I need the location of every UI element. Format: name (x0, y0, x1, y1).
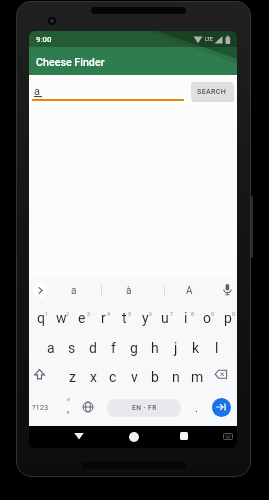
button[interactable] (33, 368, 46, 381)
button[interactable] (29, 47, 237, 75)
button[interactable] (180, 432, 188, 440)
staticText: 4 (107, 311, 111, 317)
button[interactable] (82, 401, 94, 413)
staticText: s (68, 340, 76, 356)
staticText: m (191, 369, 204, 385)
staticText: LTE (205, 37, 213, 43)
staticText: a (47, 340, 55, 356)
staticText: A (186, 285, 193, 297)
staticText: t (122, 310, 127, 326)
button[interactable]: o (197, 309, 217, 327)
button[interactable]: z (62, 368, 82, 386)
staticText: 1 (45, 311, 49, 317)
button[interactable] (33, 283, 48, 298)
staticText: , (67, 402, 70, 415)
button[interactable]: a (63, 283, 84, 298)
button[interactable]: y (135, 309, 155, 327)
staticText: n (172, 369, 180, 385)
staticText: k (192, 340, 200, 356)
staticText: r (101, 310, 106, 326)
staticText: 5 (128, 311, 132, 317)
staticText: y (142, 310, 149, 326)
button[interactable] (212, 398, 231, 417)
button[interactable]: s (62, 339, 82, 357)
staticText: x (90, 369, 97, 385)
staticText: i (184, 310, 188, 326)
staticText: d (89, 340, 97, 356)
button[interactable] (73, 431, 85, 441)
staticText: a (71, 285, 77, 297)
staticText: q (37, 310, 45, 326)
button[interactable]: m (187, 368, 207, 386)
button[interactable] (223, 433, 233, 440)
button[interactable] (214, 369, 228, 380)
staticText: a (34, 85, 40, 98)
staticText: 2 (66, 311, 70, 317)
button[interactable]: EN · FR (107, 399, 181, 417)
staticText: 0 (232, 311, 236, 317)
button[interactable]: h (145, 339, 165, 357)
staticText: 6 (149, 311, 153, 317)
staticText: 8 (191, 311, 195, 317)
staticText: ?123 (32, 403, 49, 412)
button[interactable]: d (83, 339, 103, 357)
staticText: h (151, 340, 159, 356)
button[interactable]: SEARCH (191, 82, 233, 100)
button[interactable] (32, 79, 184, 101)
button[interactable] (129, 432, 139, 442)
button[interactable]: u (155, 309, 175, 327)
staticText: g (130, 340, 138, 356)
staticText: . (195, 402, 198, 415)
staticText: 9 (211, 311, 215, 317)
button[interactable]: a (41, 339, 61, 357)
button[interactable]: q (31, 309, 51, 327)
staticText: SEARCH (197, 87, 227, 95)
button[interactable] (222, 283, 233, 297)
staticText: u (161, 310, 169, 326)
button[interactable]: . (190, 400, 202, 417)
staticText: 7 (170, 311, 174, 317)
staticText: e (78, 310, 86, 326)
staticText: w (56, 310, 67, 326)
button[interactable]: ?123 (30, 399, 51, 416)
button[interactable]: t (114, 309, 134, 327)
staticText: o (203, 310, 211, 326)
button[interactable]: j (166, 339, 186, 357)
staticText: f (111, 340, 116, 356)
staticText: z (69, 369, 76, 385)
button[interactable]: g (124, 339, 144, 357)
button[interactable]: c (103, 368, 123, 386)
button[interactable]: r (93, 309, 113, 327)
button[interactable]: v (124, 368, 144, 386)
button[interactable]: l (207, 339, 227, 357)
staticText: 9:00 (36, 35, 52, 44)
button[interactable]: e (72, 309, 92, 327)
button[interactable]: k (186, 339, 206, 357)
button[interactable]: à (118, 283, 139, 298)
button[interactable]: p (218, 309, 237, 327)
staticText: EN · FR (132, 404, 157, 412)
staticText: l (215, 340, 219, 356)
staticText: p (224, 310, 232, 326)
staticText: 3 (87, 311, 91, 317)
staticText: v (131, 369, 138, 385)
button[interactable]: n (166, 368, 186, 386)
staticText: Cheese Finder (36, 56, 105, 69)
staticText: b (151, 369, 159, 385)
staticText: c (109, 369, 117, 385)
button[interactable]: x (83, 368, 103, 386)
staticText: j (174, 340, 178, 356)
button[interactable]: w (51, 309, 71, 327)
button[interactable]: , (62, 400, 74, 417)
button[interactable]: i (176, 309, 196, 327)
button[interactable]: A (179, 283, 200, 298)
button[interactable]: b (145, 368, 165, 386)
button[interactable]: f (103, 339, 123, 357)
staticText: à (126, 285, 132, 297)
